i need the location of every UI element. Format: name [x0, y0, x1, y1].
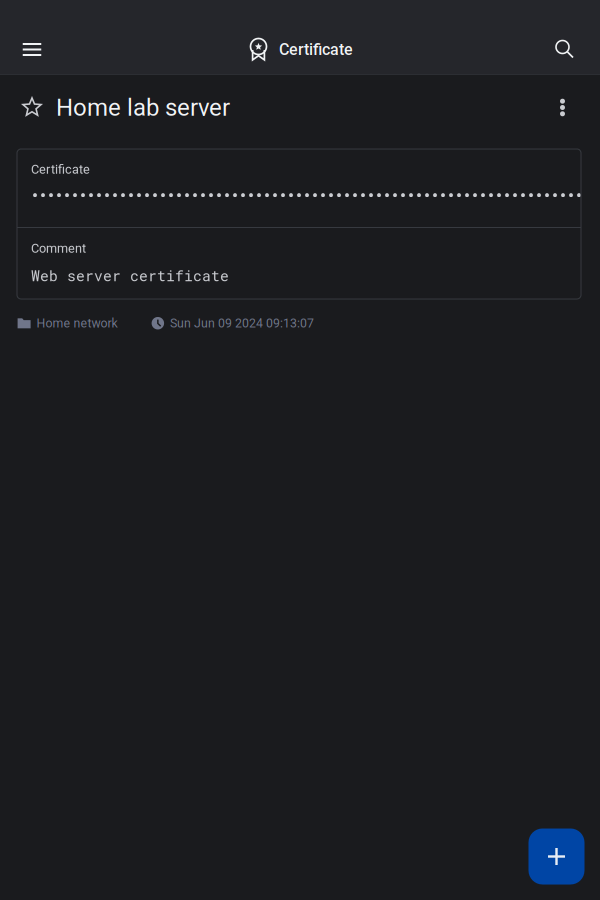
- button[interactable]: Menu: [10, 27, 54, 71]
- staticText: Certificate: [279, 40, 353, 59]
- button[interactable]: More options: [547, 91, 577, 124]
- staticText: Certificate: [31, 162, 90, 177]
- staticText: Sun Jun 09 2024 09:13:07: [170, 316, 314, 330]
- button[interactable]: Add: [528, 828, 584, 884]
- button[interactable]: Search: [543, 27, 587, 71]
- staticText: Comment: [31, 241, 86, 256]
- staticText: Home lab server: [56, 93, 230, 121]
- staticText: Home network: [37, 316, 118, 330]
- staticText: Web server certificate: [31, 266, 229, 285]
- button[interactable]: Favourite: [17, 91, 47, 124]
- staticText: ••••••••••••••••••••••••••••••••••••••••…: [31, 188, 600, 203]
